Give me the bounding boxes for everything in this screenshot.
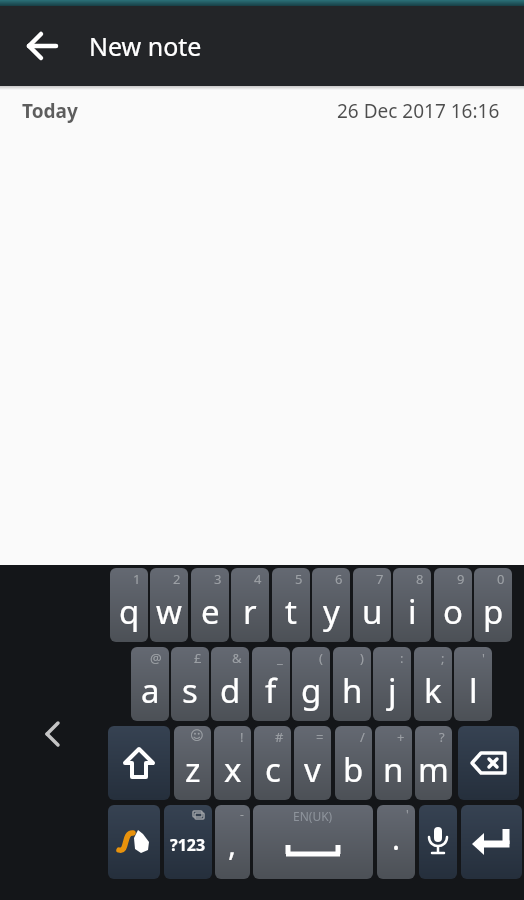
staticText: 3: [214, 570, 222, 588]
staticText: £: [194, 649, 202, 667]
staticText: c: [265, 747, 281, 792]
staticText: ': [406, 806, 409, 822]
staticText: q: [119, 589, 140, 634]
staticText: 4: [254, 570, 262, 588]
staticText: &: [232, 649, 242, 667]
button[interactable]: ,: [215, 805, 250, 879]
staticText: u: [362, 589, 383, 634]
button[interactable]: [27, 31, 57, 61]
staticText: :: [400, 649, 404, 667]
staticText: 0: [497, 570, 505, 588]
button[interactable]: y: [312, 568, 350, 642]
staticText: 8: [416, 570, 424, 588]
staticText: k: [424, 668, 442, 713]
button[interactable]: l: [454, 647, 492, 721]
staticText: m: [418, 747, 449, 792]
staticText: ☺: [190, 728, 204, 743]
button[interactable]: v: [294, 726, 331, 800]
staticText: 2: [173, 570, 181, 588]
staticText: f: [265, 668, 277, 713]
button[interactable]: b: [335, 726, 372, 800]
staticText: v: [304, 747, 321, 792]
button[interactable]: m: [415, 726, 452, 800]
button[interactable]: EN(UK): [253, 805, 373, 879]
button[interactable]: q: [110, 568, 148, 642]
staticText: g: [301, 668, 322, 713]
staticText: #: [275, 728, 284, 746]
staticText: _: [277, 649, 283, 667]
button[interactable]: [419, 805, 457, 879]
staticText: 7: [376, 570, 384, 588]
button[interactable]: n: [375, 726, 412, 800]
staticText: l: [469, 668, 478, 713]
staticText: EN(UK): [293, 808, 333, 824]
button[interactable]: w: [150, 568, 188, 642]
button[interactable]: t: [272, 568, 310, 642]
button[interactable]: d: [211, 647, 249, 721]
button[interactable]: ?123: [164, 805, 212, 879]
button[interactable]: z: [174, 726, 211, 800]
button[interactable]: [458, 726, 519, 800]
staticText: .: [392, 818, 401, 859]
staticText: t: [285, 589, 297, 634]
button[interactable]: h: [333, 647, 371, 721]
button[interactable]: p: [474, 568, 512, 642]
staticText: ': [482, 649, 485, 667]
button[interactable]: e: [191, 568, 229, 642]
staticText: ?: [439, 728, 445, 746]
button[interactable]: .: [377, 805, 415, 879]
staticText: o: [443, 589, 463, 634]
staticText: p: [483, 589, 504, 634]
staticText: j: [388, 668, 397, 713]
button[interactable]: c: [254, 726, 291, 800]
button[interactable]: [108, 805, 160, 879]
staticText: d: [220, 668, 241, 713]
staticText: =: [316, 728, 324, 746]
staticText: /: [360, 728, 365, 746]
button[interactable]: g: [292, 647, 330, 721]
staticText: s: [182, 668, 198, 713]
staticText: ;: [441, 649, 445, 667]
button[interactable]: [30, 712, 74, 756]
staticText: z: [185, 747, 201, 792]
button[interactable]: o: [434, 568, 472, 642]
button[interactable]: u: [353, 568, 391, 642]
staticText: 26 Dec 2017 16:16: [337, 98, 500, 124]
staticText: -: [240, 806, 244, 822]
staticText: +: [397, 728, 405, 746]
staticText: Today: [22, 98, 78, 124]
button[interactable]: i: [393, 568, 431, 642]
staticText: y: [323, 589, 340, 634]
button[interactable]: f: [252, 647, 290, 721]
staticText: 6: [335, 570, 343, 588]
button[interactable]: a: [131, 647, 169, 721]
staticText: n: [383, 747, 404, 792]
staticText: ?123: [170, 834, 206, 856]
button[interactable]: s: [171, 647, 209, 721]
staticText: New note: [89, 29, 202, 63]
staticText: 1: [133, 570, 141, 588]
staticText: e: [201, 589, 220, 634]
staticText: r: [243, 589, 257, 634]
staticText: b: [343, 747, 364, 792]
staticText: !: [240, 728, 244, 746]
button[interactable]: k: [414, 647, 452, 721]
button[interactable]: j: [373, 647, 411, 721]
staticText: 5: [295, 570, 303, 588]
staticText: x: [224, 747, 242, 792]
staticText: 9: [457, 570, 465, 588]
staticText: ): [360, 649, 364, 667]
staticText: (: [319, 649, 323, 667]
staticText: a: [141, 668, 160, 713]
button[interactable]: [108, 726, 170, 800]
staticText: ,: [228, 824, 237, 865]
staticText: i: [408, 589, 417, 634]
button[interactable]: x: [214, 726, 251, 800]
button[interactable]: [461, 805, 522, 879]
button[interactable]: r: [231, 568, 269, 642]
staticText: @: [150, 649, 162, 667]
staticText: h: [342, 668, 363, 713]
staticText: w: [156, 589, 182, 634]
